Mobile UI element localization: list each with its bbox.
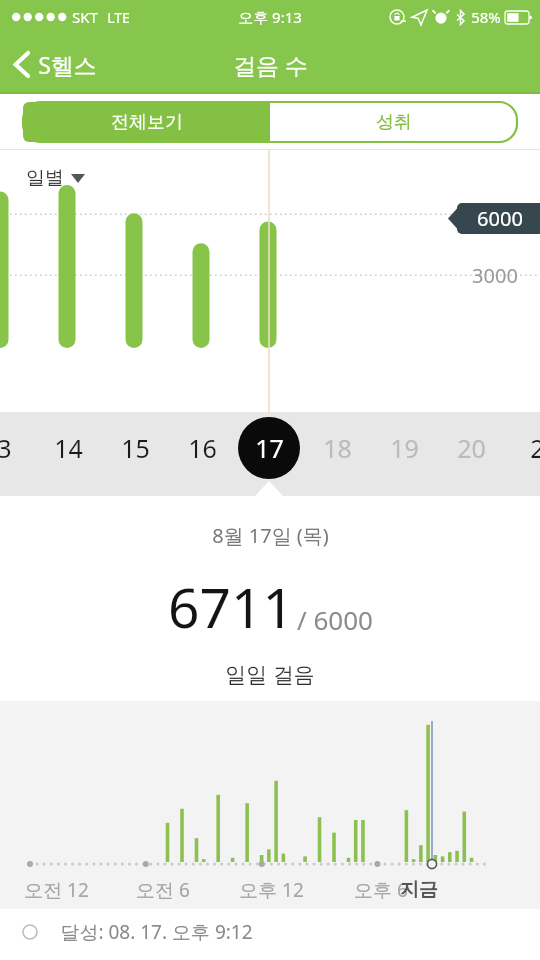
button[interactable]: 14	[42, 422, 94, 474]
staticText: 20	[457, 431, 486, 465]
button[interactable]: 16	[176, 422, 228, 474]
staticText: 오전 6	[136, 877, 190, 903]
staticText: 달성: 08. 17. 오후 9:12	[60, 919, 253, 945]
button[interactable]: 19	[378, 422, 430, 474]
staticText: 지금	[400, 878, 438, 902]
staticText: 16	[188, 431, 217, 465]
button[interactable]: 성취	[270, 102, 517, 142]
staticText: 3000	[472, 262, 518, 289]
staticText: 2	[530, 431, 540, 465]
staticText: 일일 걸음	[225, 660, 315, 689]
staticText: 14	[54, 431, 83, 465]
staticText: 6711	[168, 569, 294, 644]
staticText: 8월 17일 (목)	[212, 522, 329, 549]
staticText: 58%	[471, 7, 501, 27]
button[interactable]: 일별	[22, 162, 89, 194]
staticText: 오후 12	[239, 877, 304, 903]
staticText: 17	[255, 431, 284, 465]
staticText: 19	[390, 431, 419, 465]
button[interactable]: 17	[243, 422, 295, 474]
staticText: 전체보기	[111, 111, 183, 134]
button[interactable]: 3	[0, 422, 30, 474]
button[interactable]: S헬스	[0, 41, 111, 88]
staticText: 18	[323, 431, 352, 465]
staticText: SKT	[72, 7, 98, 27]
staticText: 걸음 수	[233, 49, 308, 80]
staticText: 오후 9:13	[238, 7, 302, 27]
button[interactable]: 18	[311, 422, 363, 474]
staticText: S헬스	[38, 49, 97, 80]
staticText: 일별	[26, 166, 64, 190]
staticText: LTE	[107, 8, 130, 27]
button[interactable]: 전체보기	[23, 102, 270, 142]
staticText: 성취	[376, 111, 412, 134]
staticText: 3	[0, 431, 12, 465]
staticText: / 6000	[297, 602, 373, 637]
staticText: 15	[121, 431, 150, 465]
staticText: 6000	[477, 205, 523, 232]
staticText: 오전 12	[24, 877, 89, 903]
staticText: 오후 6	[354, 877, 408, 903]
button[interactable]: 15	[109, 422, 161, 474]
button[interactable]: 2	[511, 422, 540, 474]
button[interactable]: 20	[445, 422, 497, 474]
